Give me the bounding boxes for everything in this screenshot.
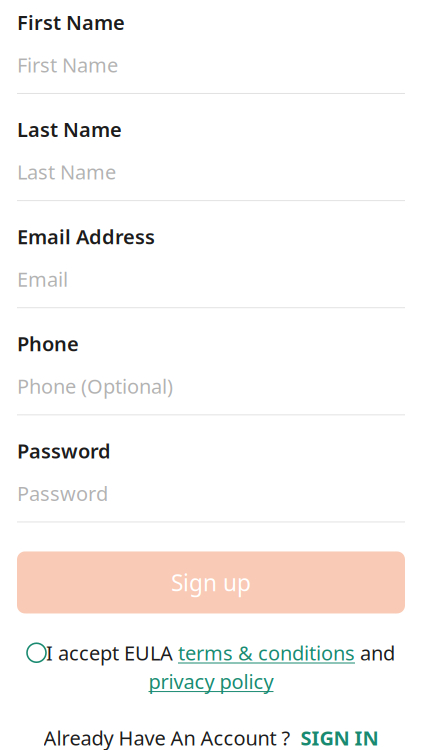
- staticText: Password: [17, 480, 108, 506]
- staticText: Email Address: [17, 223, 155, 250]
- staticText: First Name: [17, 51, 118, 78]
- button[interactable]: SIGN IN: [300, 725, 378, 750]
- button[interactable]: Sign up: [17, 551, 405, 613]
- staticText: Sign up: [171, 567, 251, 597]
- staticText: privacy policy: [148, 668, 273, 695]
- staticText: First Name: [17, 9, 125, 35]
- button[interactable]: privacy policy: [148, 668, 273, 695]
- staticText: Last Name: [17, 158, 116, 185]
- staticText: Password: [17, 437, 111, 464]
- staticText: SIGN IN: [300, 725, 378, 750]
- button[interactable]: Accept EULA: [27, 643, 46, 662]
- staticText: Last Name: [17, 116, 122, 143]
- staticText: Phone (Optional): [17, 373, 173, 399]
- staticText: Phone: [17, 330, 79, 357]
- staticText: Email: [17, 266, 68, 292]
- button[interactable]: terms & conditions: [178, 639, 355, 666]
- staticText: Already Have An Account ?: [43, 725, 290, 750]
- staticText: and: [355, 639, 395, 666]
- staticText: terms & conditions: [178, 639, 355, 666]
- staticText: I accept EULA: [46, 639, 178, 666]
